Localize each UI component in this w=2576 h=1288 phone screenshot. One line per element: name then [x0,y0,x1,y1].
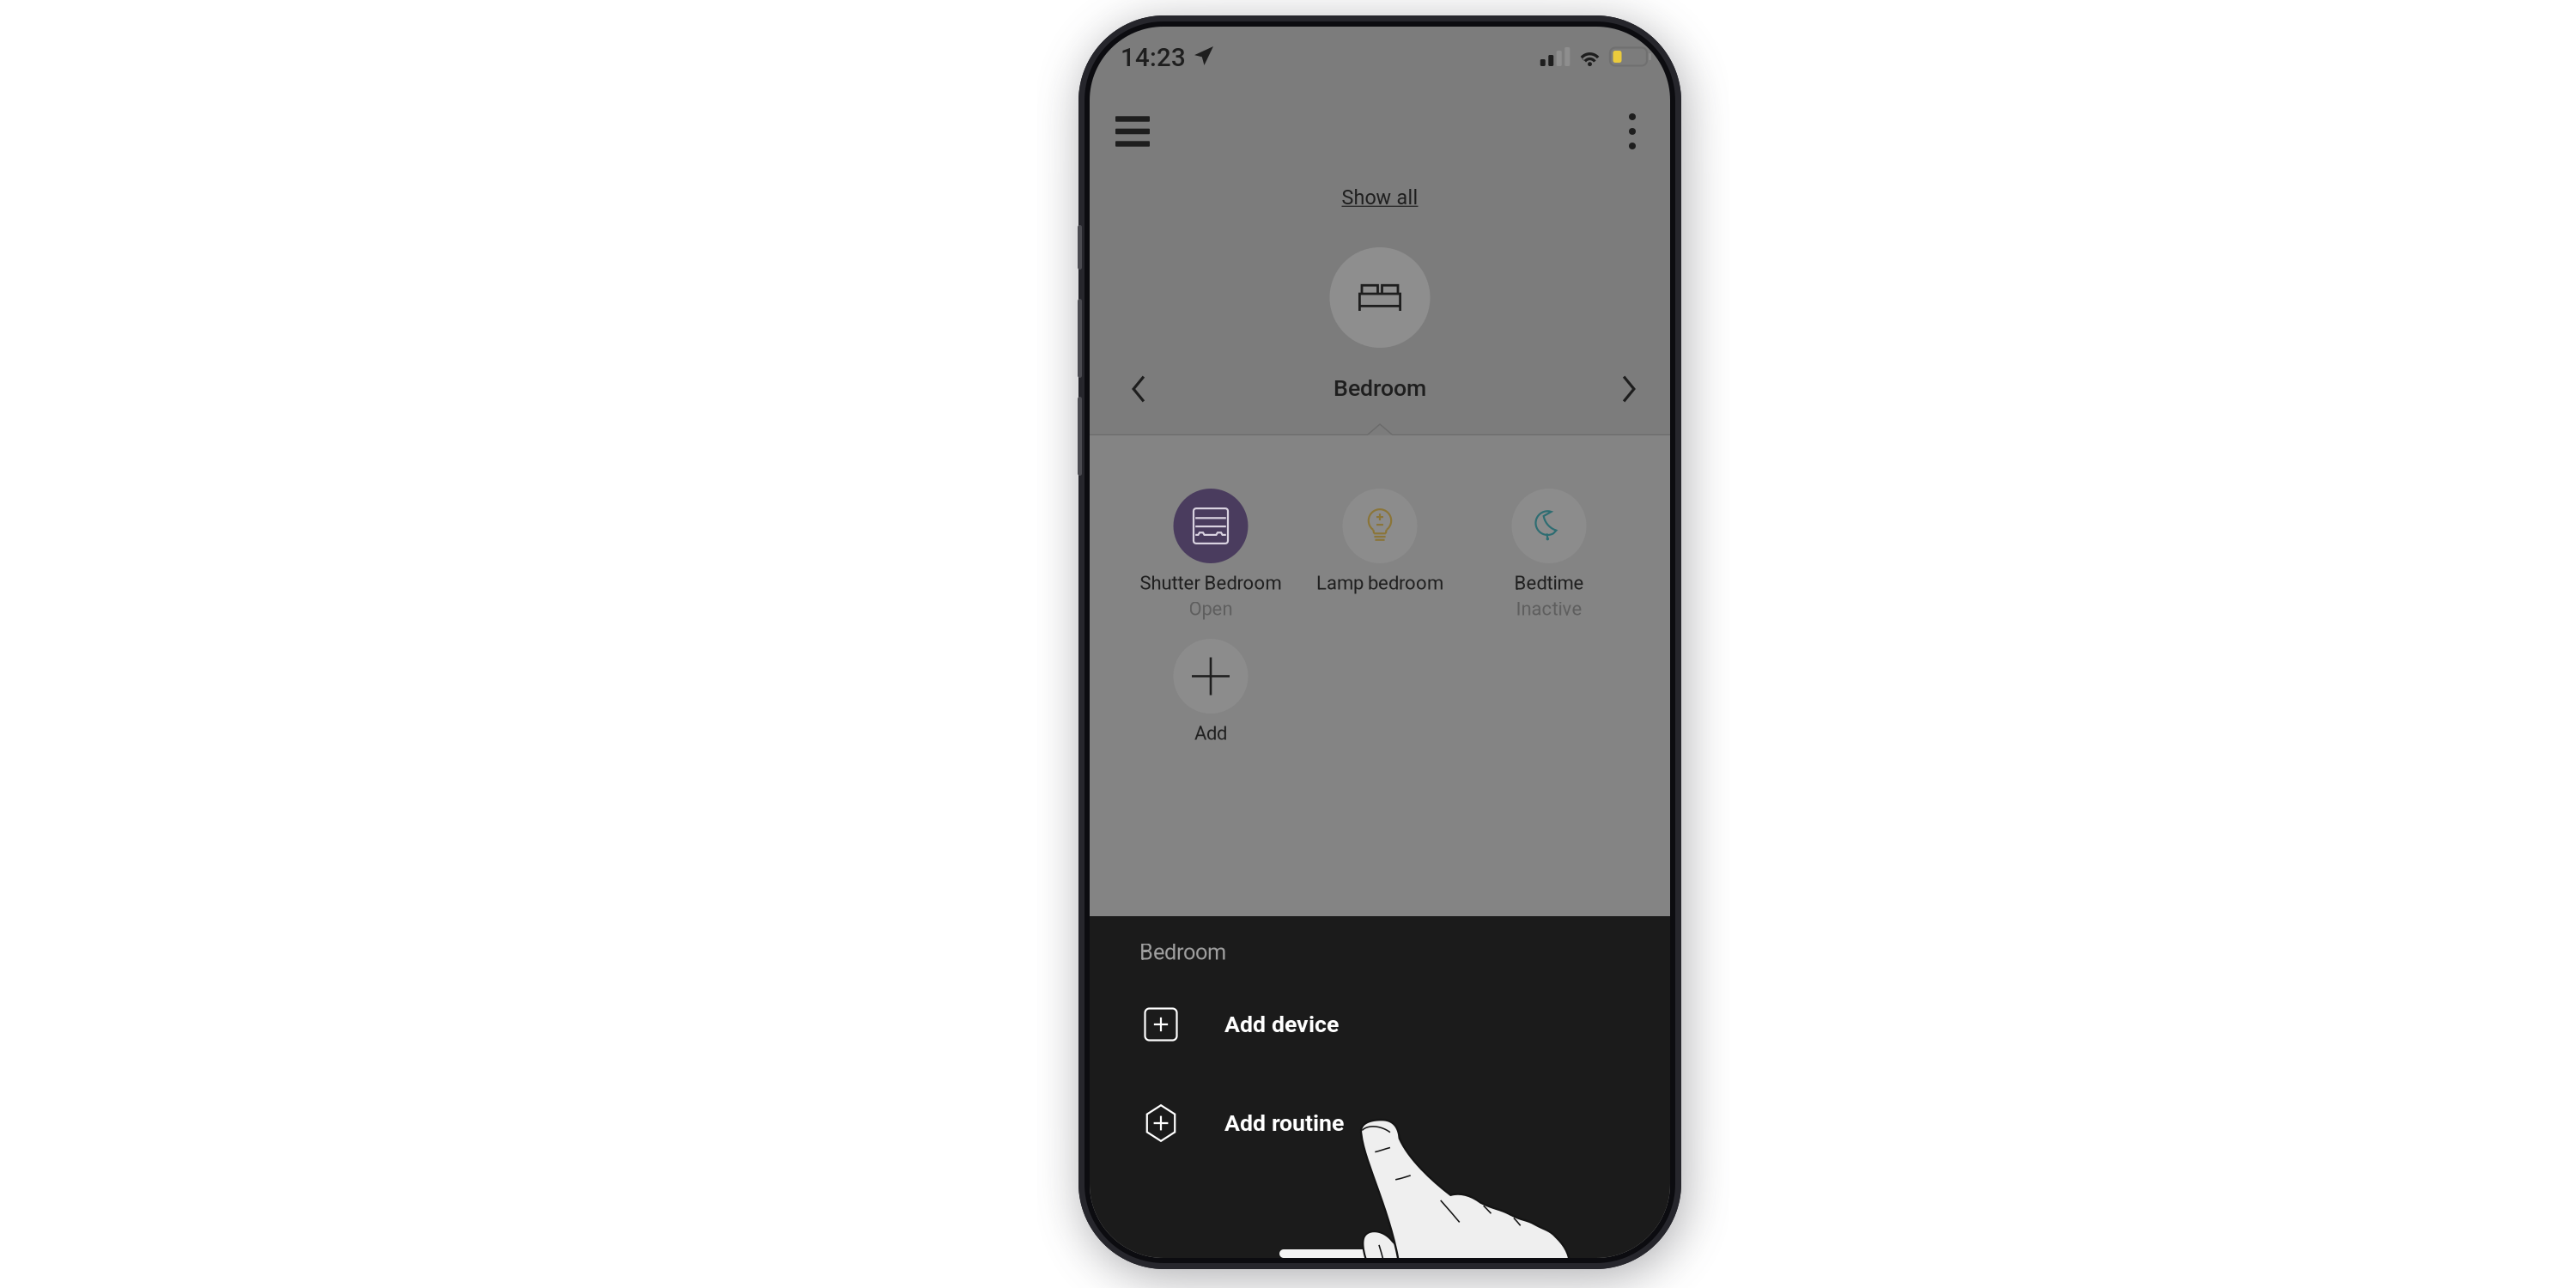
button[interactable]: Shutter Bedroom [1126,489,1295,639]
staticText: 14:23 [1121,43,1186,72]
staticText: Lamp bedroom [1316,572,1443,594]
staticText: Bedroom [1334,375,1426,402]
button[interactable]: Lamp bedroom [1295,489,1464,639]
button[interactable]: Previous room [1111,361,1166,416]
button[interactable]: Menu [1100,100,1165,162]
button[interactable]: Add routine [1090,1078,1670,1168]
staticText: Add routine [1224,1110,1344,1137]
staticText: Shutter Bedroom [1140,572,1282,594]
staticText: Show all [1342,186,1418,209]
button[interactable]: Show all [1285,179,1474,216]
staticText: Bedroom [1139,939,1226,965]
staticText: Add device [1224,1011,1339,1038]
staticText: Open [1189,598,1233,620]
button[interactable]: Add device [1090,980,1670,1069]
button[interactable]: Next room [1601,361,1656,416]
staticText: Add [1194,722,1227,744]
button[interactable]: More options [1605,100,1660,162]
button[interactable]: Add [1126,639,1295,789]
staticText: Bedtime [1514,572,1584,594]
staticText: Inactive [1516,598,1582,620]
button[interactable]: Bedtime [1464,489,1634,639]
